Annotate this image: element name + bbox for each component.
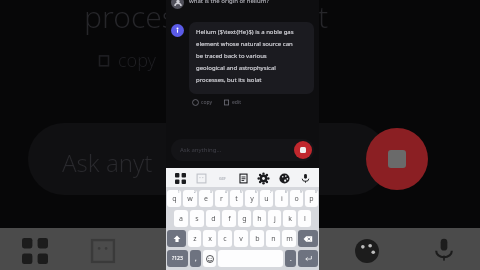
- button[interactable]: Clipboard history: [193, 170, 209, 186]
- staticText: q: [172, 194, 177, 204]
- staticText: 4: [225, 190, 227, 194]
- button[interactable]: p: [305, 190, 318, 207]
- button[interactable]: .: [285, 250, 296, 267]
- button[interactable]: Voice input: [297, 170, 313, 186]
- button[interactable]: Ask anything...: [171, 139, 314, 161]
- button[interactable]: c: [218, 230, 232, 247]
- staticText: Helium ($\text{He}$) is a noble gas: [196, 28, 294, 36]
- button[interactable]: Enter: [298, 250, 318, 267]
- staticText: b: [255, 234, 260, 244]
- staticText: d: [211, 214, 216, 224]
- staticText: Ask anyt: [62, 146, 153, 179]
- button[interactable]: o: [290, 190, 303, 207]
- button[interactable]: q: [167, 190, 181, 207]
- staticText: j: [274, 214, 276, 224]
- staticText: copy: [201, 99, 212, 106]
- staticText: t: [318, 0, 329, 37]
- staticText: v: [239, 234, 243, 244]
- button[interactable]: u: [260, 190, 273, 207]
- button[interactable]: ,: [190, 250, 201, 267]
- button[interactable]: x: [203, 230, 216, 247]
- button[interactable]: e: [199, 190, 213, 207]
- staticText: s: [195, 214, 199, 224]
- button[interactable]: a: [174, 210, 188, 227]
- button[interactable]: d: [206, 210, 220, 227]
- button[interactable]: t: [230, 190, 243, 207]
- button[interactable]: k: [283, 210, 296, 227]
- staticText: copy: [118, 48, 157, 73]
- button[interactable]: Apps: [20, 236, 50, 266]
- button[interactable]: f: [222, 210, 236, 227]
- button[interactable]: v: [234, 230, 248, 247]
- button[interactable]: s: [190, 210, 204, 227]
- button[interactable]: ?123: [167, 250, 188, 267]
- staticText: c: [223, 234, 227, 244]
- staticText: .: [290, 255, 292, 263]
- staticText: 6: [255, 190, 257, 194]
- staticText: 0: [315, 190, 317, 194]
- staticText: x: [208, 234, 212, 244]
- button[interactable]: y: [245, 190, 258, 207]
- staticText: h: [257, 214, 262, 224]
- staticText: t: [235, 194, 238, 204]
- staticText: proces: [84, 0, 176, 37]
- button[interactable]: GIF: [214, 170, 230, 186]
- staticText: edit: [232, 99, 241, 106]
- button[interactable]: l: [298, 210, 311, 227]
- button[interactable]: Theme: [352, 236, 382, 266]
- staticText: r: [220, 194, 223, 204]
- button[interactable]: Theme: [276, 170, 292, 186]
- staticText: p: [309, 194, 314, 204]
- staticText: l: [304, 214, 306, 224]
- staticText: 5: [240, 190, 242, 194]
- staticText: e: [204, 194, 208, 204]
- button[interactable]: z: [188, 230, 201, 247]
- staticText: z: [193, 234, 197, 244]
- button[interactable]: r: [215, 190, 228, 207]
- button[interactable]: copy: [190, 97, 214, 108]
- staticText: f: [228, 214, 231, 224]
- button[interactable]: n: [266, 230, 280, 247]
- staticText: what is the origin of helium?: [189, 0, 269, 5]
- staticText: 9: [300, 190, 302, 194]
- staticText: 1: [178, 190, 180, 194]
- staticText: GIF: [219, 176, 226, 181]
- staticText: element whose natural source can: [196, 40, 293, 48]
- button[interactable]: w: [183, 190, 197, 207]
- button[interactable]: Apps: [172, 170, 188, 186]
- staticText: 8: [285, 190, 287, 194]
- button[interactable]: edit: [221, 97, 243, 108]
- button[interactable]: g: [238, 210, 251, 227]
- staticText: g: [242, 214, 247, 224]
- button[interactable]: m: [282, 230, 296, 247]
- staticText: a: [179, 214, 183, 224]
- button[interactable]: Stickers: [88, 236, 118, 266]
- staticText: n: [271, 234, 276, 244]
- button[interactable]: Emoji: [203, 250, 216, 267]
- button[interactable]: [298, 230, 318, 247]
- button[interactable]: Settings: [255, 170, 271, 186]
- button[interactable]: Stop recording: [294, 141, 312, 159]
- staticText: y: [250, 194, 254, 204]
- staticText: u: [264, 194, 269, 204]
- button[interactable]: h: [253, 210, 266, 227]
- button[interactable]: [167, 230, 186, 247]
- button[interactable]: j: [268, 210, 281, 227]
- button[interactable]: i: [275, 190, 288, 207]
- staticText: o: [294, 194, 299, 204]
- button[interactable]: Voice input: [428, 234, 460, 266]
- button[interactable]: Clipboard: [235, 170, 251, 186]
- staticText: processes, but its isolat: [196, 76, 262, 84]
- staticText: 7: [270, 190, 272, 194]
- staticText: ,: [195, 255, 197, 263]
- staticText: w: [187, 194, 193, 204]
- staticText: ?123: [172, 255, 183, 262]
- staticText: 2: [194, 190, 196, 194]
- staticText: k: [288, 214, 292, 224]
- staticText: be traced back to various: [196, 52, 267, 60]
- staticText: geological and astrophysical: [196, 64, 276, 72]
- staticText: i: [281, 194, 283, 204]
- button[interactable]: b: [250, 230, 264, 247]
- staticText: 3: [210, 190, 212, 194]
